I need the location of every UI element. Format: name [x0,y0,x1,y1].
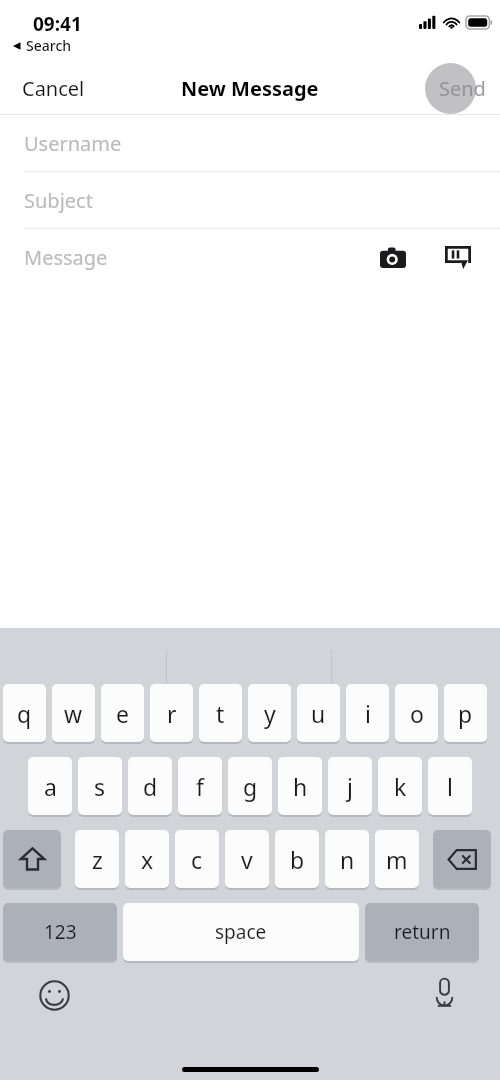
button[interactable]: Emoji [36,977,72,1013]
staticText: g [243,771,258,802]
staticText: c [191,844,203,875]
staticText: z [92,844,103,875]
staticText: s [94,771,106,802]
button[interactable]: i [346,684,389,742]
staticText: x [141,844,154,875]
staticText: h [293,771,308,802]
staticText: New Message [181,75,319,102]
staticText: 09:41 [33,11,82,37]
staticText: i [365,698,371,729]
staticText: m [386,844,408,875]
staticText: n [340,844,355,875]
button[interactable]: Cancel [22,75,85,102]
staticText: y [264,698,276,729]
staticText: Subject [24,187,93,214]
button[interactable]: v [225,830,269,888]
button[interactable]: z [75,830,119,888]
button[interactable]: Sticker [442,241,474,273]
button[interactable]: b [275,830,319,888]
button[interactable]: 123 [3,903,117,961]
button[interactable]: e [101,684,144,742]
staticText: return [394,919,451,945]
button[interactable]: k [378,757,422,815]
staticText: t [216,698,225,729]
staticText: Search [26,36,72,55]
button[interactable]: u [297,684,340,742]
button[interactable]: a [28,757,72,815]
button[interactable]: Shift [3,830,61,888]
staticText: q [17,698,32,729]
button[interactable]: Dictation [426,975,462,1011]
button[interactable]: n [325,830,369,888]
staticText: f [196,771,204,802]
button[interactable]: Backspace [433,830,491,888]
staticText: b [290,844,305,875]
button[interactable]: d [128,757,172,815]
staticText: u [311,698,326,729]
button[interactable]: f [178,757,222,815]
button[interactable]: o [395,684,438,742]
staticText: v [241,844,253,875]
button[interactable]: Send [439,75,486,102]
button[interactable]: Subject [0,172,500,228]
button[interactable]: space [123,903,359,961]
staticText: p [458,698,473,729]
staticText: Username [24,130,122,157]
button[interactable]: Search [12,36,72,55]
staticText: a [44,771,57,802]
button[interactable]: g [228,757,272,815]
button[interactable]: r [150,684,193,742]
staticText: 123 [44,919,77,945]
button[interactable]: m [375,830,419,888]
button[interactable]: q [3,684,46,742]
staticText: j [347,771,353,802]
button[interactable]: h [278,757,322,815]
staticText: Cancel [22,75,85,102]
staticText: r [167,698,177,729]
staticText: k [394,771,407,802]
button[interactable]: p [444,684,487,742]
staticText: d [143,771,158,802]
button[interactable]: t [199,684,242,742]
button[interactable]: w [52,684,95,742]
staticText: space [215,919,267,945]
button[interactable]: Username [0,115,500,171]
staticText: o [410,698,424,729]
staticText: Message [24,244,108,271]
button[interactable]: x [125,830,169,888]
staticText: Send [439,75,486,102]
button[interactable]: y [248,684,291,742]
button[interactable]: s [78,757,122,815]
button[interactable]: j [328,757,372,815]
button[interactable]: c [175,830,219,888]
staticText: e [116,698,129,729]
staticText: l [447,771,453,802]
button[interactable]: Camera [377,241,409,273]
button[interactable]: l [428,757,472,815]
staticText: w [64,698,83,729]
button[interactable]: return [365,903,479,961]
